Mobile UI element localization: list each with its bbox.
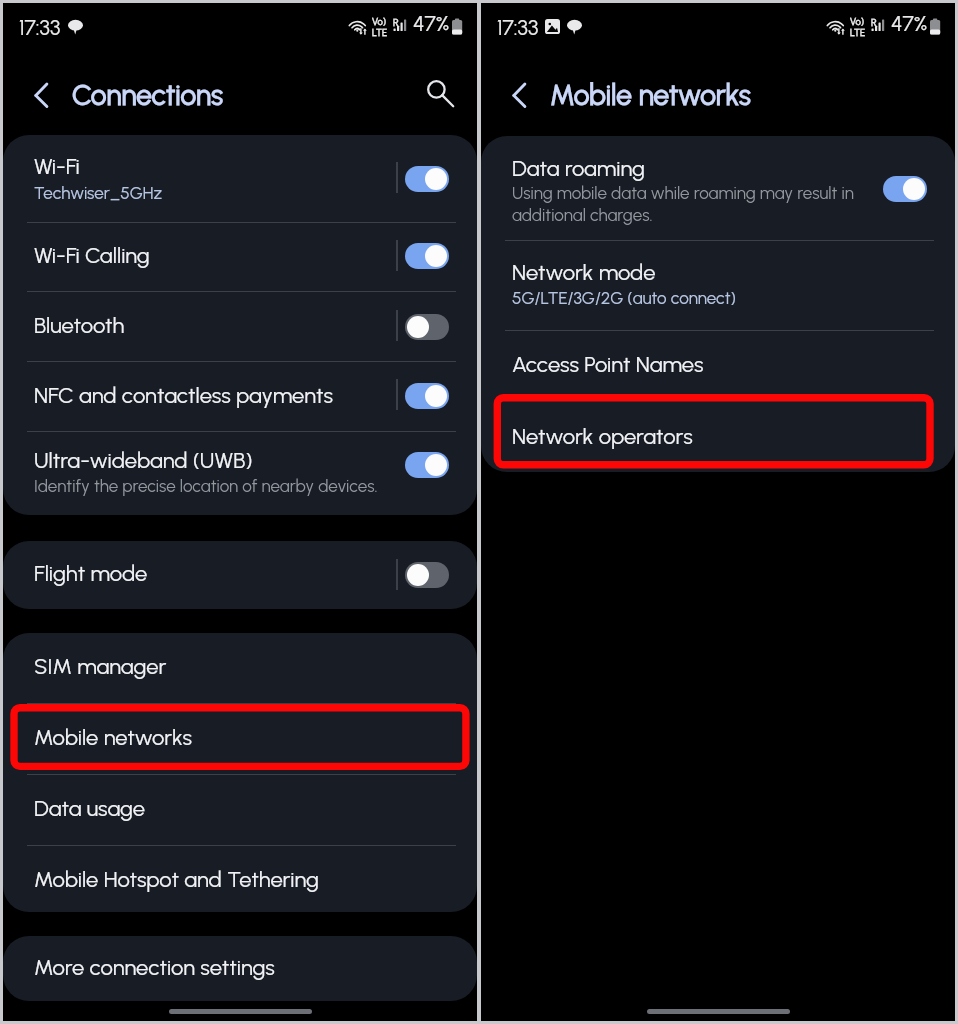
button[interactable]: SIM manager [3,633,477,703]
staticText: LTE [372,27,388,38]
button[interactable]: Access Point Names [481,331,955,400]
button[interactable]: More connection settings [3,936,477,1001]
button[interactable]: NFC and contactless payments [3,362,477,431]
staticText: 47% [413,11,450,36]
button[interactable]: Wi-Fi [3,135,477,222]
staticText: 17:33 [19,15,61,40]
staticText: Mobile networks [34,724,192,750]
staticText: Mobile Hotspot and Tethering [34,866,319,892]
button[interactable]: Mobile Hotspot and Tethering [3,846,477,912]
button[interactable]: NFC and contactless payments switch [405,383,449,409]
staticText: Network operators [512,423,693,449]
button[interactable]: Data usage [3,775,477,845]
button[interactable]: Bluetooth [3,292,477,361]
button[interactable]: Ultra-wideband (UWB) switch [405,452,449,478]
staticText: Vo) [372,16,386,27]
staticText: Bluetooth [34,312,125,338]
button[interactable]: Search [417,70,461,114]
button[interactable]: Navigate up [14,65,60,111]
button[interactable]: Flight mode switch [405,562,449,588]
staticText: LTE [850,27,866,38]
button[interactable]: Data roaming switch [883,176,927,202]
button[interactable]: Mobile networks [3,704,477,774]
button[interactable]: Wi-Fi Calling [3,223,477,291]
staticText: R [871,16,877,28]
staticText: Flight mode [34,560,148,586]
staticText: More connection settings [34,954,275,980]
staticText: Identify the precise location of nearby … [34,476,469,496]
button[interactable]: Flight mode [3,541,477,609]
button[interactable]: Network mode [481,241,955,330]
button[interactable]: Navigate up [492,65,538,111]
staticText: Techwiser_5GHz [34,183,447,203]
staticText: Wi-Fi Calling [34,242,150,268]
button[interactable]: Wi-Fi switch [405,166,449,192]
staticText: 5G/LTE/3G/2G (auto connect) [512,288,925,308]
staticText: Connections [72,78,224,112]
button[interactable]: Data roaming [481,136,955,240]
staticText: Wi-Fi [34,153,80,179]
staticText: NFC and contactless payments [34,382,334,408]
staticText: Access Point Names [512,351,704,377]
staticText: 47% [891,11,928,36]
staticText: 17:33 [497,15,539,40]
staticText: SIM manager [34,653,167,679]
button[interactable]: Bluetooth switch [405,314,449,340]
staticText: R [393,16,399,28]
staticText: Mobile networks [550,78,751,112]
button[interactable]: Wi-Fi Calling switch [405,243,449,269]
staticText: Network mode [512,259,656,285]
staticText: Ultra-wideband (UWB) [34,447,253,473]
staticText: Data usage [34,795,146,821]
button[interactable]: Ultra-wideband (UWB) [3,432,477,515]
button[interactable]: Network operators [481,400,955,472]
staticText: Using mobile data while roaming may resu… [512,183,859,225]
staticText: Vo) [850,16,864,27]
staticText: Data roaming [512,155,645,181]
